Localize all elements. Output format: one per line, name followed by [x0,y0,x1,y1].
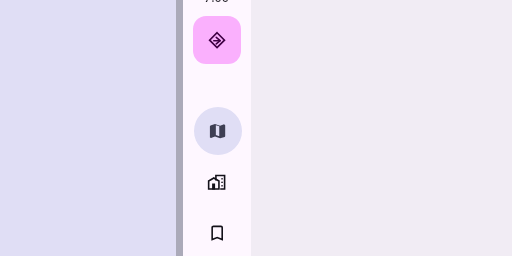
staticText: 7:00 [204,0,229,3]
button[interactable]: Home and work [193,158,241,206]
button[interactable]: Map [194,107,242,155]
button[interactable]: Directions [193,16,241,64]
button[interactable]: Saved [193,209,241,256]
